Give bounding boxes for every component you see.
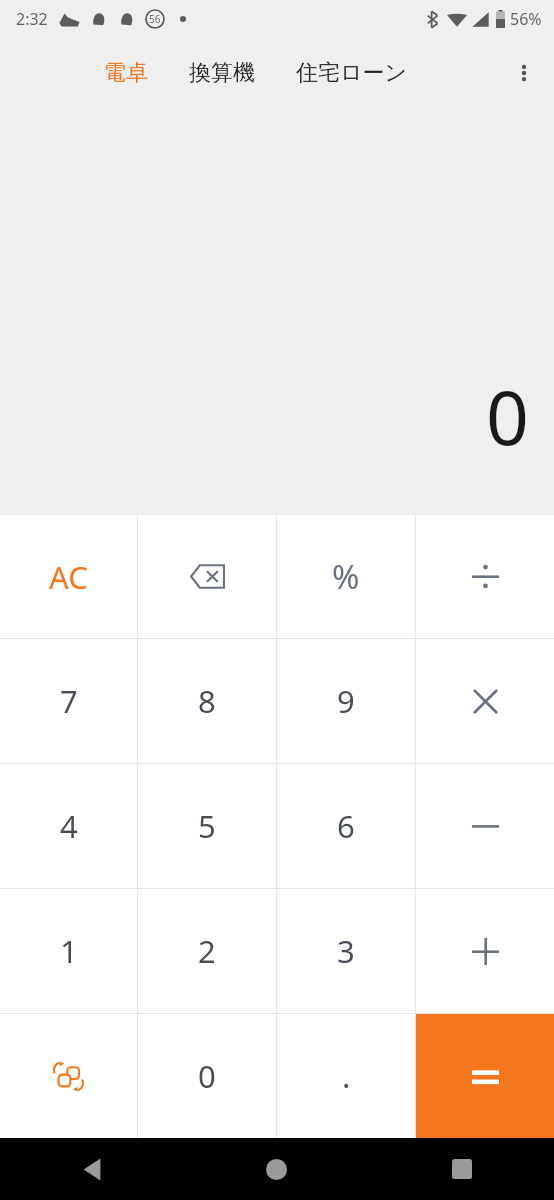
button[interactable]: 6 xyxy=(277,764,415,888)
staticText: 8 xyxy=(198,680,216,722)
button[interactable]: 7 xyxy=(0,639,137,763)
button[interactable]: Backspace xyxy=(138,515,276,638)
staticText: 住宅ローン xyxy=(296,59,408,87)
button[interactable]: 5 xyxy=(138,764,276,888)
button[interactable]: 8 xyxy=(138,639,276,763)
staticText: 6 xyxy=(337,805,355,847)
staticText: 2:32 xyxy=(16,8,48,30)
button[interactable]: Plus xyxy=(416,889,554,1013)
staticText: 1 xyxy=(60,930,78,972)
button[interactable]: More options xyxy=(500,49,548,97)
staticText: 4 xyxy=(60,805,78,847)
staticText: 3 xyxy=(337,930,355,972)
staticText: 換算機 xyxy=(189,59,255,87)
staticText: 7 xyxy=(60,680,78,722)
button[interactable]: 住宅ローン xyxy=(292,47,412,99)
staticText: 5 xyxy=(198,805,216,847)
button[interactable]: . xyxy=(277,1014,415,1138)
staticText: 56% xyxy=(510,8,542,30)
button[interactable]: 0 xyxy=(138,1014,276,1138)
button[interactable]: Home xyxy=(184,1138,369,1200)
staticText: 2 xyxy=(198,930,216,972)
staticText: 電卓 xyxy=(104,59,148,87)
button[interactable]: 2 xyxy=(138,889,276,1013)
button[interactable]: 1 xyxy=(0,889,137,1013)
button[interactable]: 換算機 xyxy=(185,47,259,99)
button[interactable]: Minus xyxy=(416,764,554,888)
staticText: 0 xyxy=(198,1055,216,1097)
staticText: AC xyxy=(49,556,88,598)
button[interactable]: AC xyxy=(0,515,137,638)
button[interactable]: Convert units xyxy=(0,1014,137,1138)
staticText: % xyxy=(332,554,360,599)
button[interactable]: 3 xyxy=(277,889,415,1013)
button[interactable]: 4 xyxy=(0,764,137,888)
staticText: 9 xyxy=(337,680,355,722)
button[interactable]: % xyxy=(277,515,415,638)
button[interactable]: Divide xyxy=(416,515,554,638)
staticText: 56 xyxy=(149,12,161,26)
staticText: 0 xyxy=(486,365,529,467)
button[interactable]: Recents xyxy=(369,1138,554,1200)
button[interactable]: Multiply xyxy=(416,639,554,763)
button[interactable]: Back xyxy=(0,1138,184,1200)
button[interactable]: 9 xyxy=(277,639,415,763)
button[interactable]: Equals xyxy=(416,1014,554,1138)
button[interactable]: 電卓 xyxy=(100,47,152,99)
staticText: . xyxy=(342,1055,351,1097)
